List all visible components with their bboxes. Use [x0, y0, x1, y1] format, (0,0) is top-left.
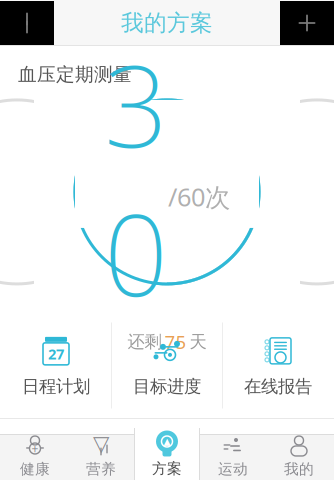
button[interactable]: ▲ — [134, 428, 200, 480]
staticText: 27 — [48, 344, 64, 364]
staticText: ▽ — [93, 431, 109, 456]
staticText: + — [31, 440, 38, 456]
staticText: 天 — [189, 331, 206, 352]
button[interactable]: 我的 — [266, 428, 332, 480]
staticText: /60次 — [168, 180, 230, 213]
button[interactable]: + — [2, 428, 68, 480]
staticText: 日程计划 — [22, 376, 90, 397]
button[interactable]: Back — [0, 1, 54, 45]
staticText: 目标进度 — [133, 376, 201, 397]
staticText: 还剩 — [127, 331, 161, 352]
staticText: 我的 — [284, 460, 314, 478]
staticText: 血压定期测量 — [18, 63, 132, 86]
button[interactable]: Add — [280, 1, 334, 45]
button[interactable]: 27 — [1, 313, 111, 418]
button[interactable]: 运动 — [200, 428, 266, 480]
button[interactable]: 目标进度 — [112, 313, 222, 418]
staticText: 营养 — [86, 460, 116, 478]
staticText: 75 — [164, 329, 186, 354]
staticText: 在线报告 — [244, 376, 312, 397]
staticText: 健康 — [20, 460, 50, 478]
staticText: 运动 — [218, 460, 248, 478]
button[interactable]: 在线报告 — [223, 313, 333, 418]
staticText: ▲ — [163, 436, 170, 447]
staticText: 30 — [104, 30, 168, 327]
staticText: 方案 — [152, 459, 182, 477]
staticText: 我的方案 — [121, 9, 213, 37]
button[interactable]: ▽ — [68, 428, 134, 480]
